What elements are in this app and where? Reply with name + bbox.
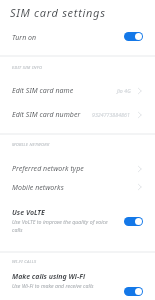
button[interactable]: Toggle [124, 217, 143, 226]
staticText: Jio 4G [117, 87, 131, 94]
other: Open [138, 87, 143, 95]
other: Open [138, 183, 143, 191]
staticText: Mobile networks [12, 183, 64, 193]
staticText: Preferred network type [12, 164, 84, 174]
button[interactable]: Turn on [0, 28, 155, 46]
staticText: Turn on [12, 33, 37, 43]
staticText: Edit SIM card name [12, 86, 74, 96]
button[interactable]: Edit SIM card number [0, 104, 155, 126]
staticText: WI-FI CALLS [12, 259, 37, 265]
staticText: SIM card settings [10, 5, 106, 20]
button[interactable]: Make calls using Wi-Fi [0, 268, 155, 294]
staticText: MOBILE NETWORK [12, 142, 50, 148]
button[interactable]: Use VoLTE [0, 204, 155, 238]
staticText: Use Wi-Fi to make and receive calls [12, 282, 94, 289]
button[interactable]: Edit SIM card name [0, 80, 155, 102]
button[interactable]: Preferred network type [0, 158, 155, 180]
staticText: EDIT SIM INFO [12, 65, 43, 71]
other: Open [138, 165, 143, 173]
staticText: Use VoLTE to improve the quality of voic… [12, 218, 108, 225]
staticText: Edit SIM card number [12, 110, 81, 120]
button[interactable]: Toggle [124, 287, 143, 296]
button[interactable]: Mobile networks [0, 180, 155, 200]
staticText: 9324773884861 [92, 111, 130, 118]
staticText: calls [12, 226, 23, 233]
staticText: Make calls using Wi-Fi [12, 272, 86, 282]
staticText: Use VoLTE [12, 208, 45, 218]
button[interactable]: Toggle [124, 32, 143, 41]
other: Open [138, 111, 143, 119]
